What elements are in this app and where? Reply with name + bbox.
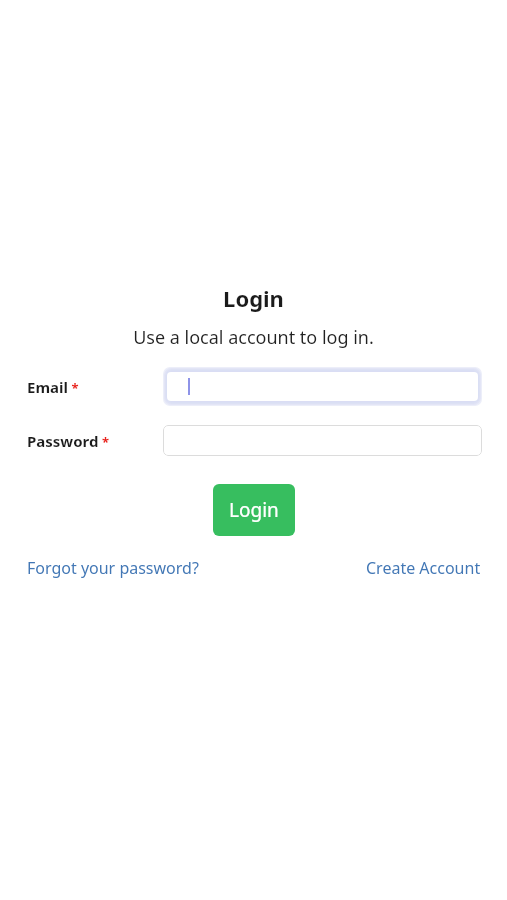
button[interactable]: Password input [163,425,482,456]
button[interactable]: Forgot your password? [27,557,199,579]
staticText: Password * [27,431,110,451]
staticText: Use a local account to log in. [0,325,507,350]
staticText: Forgot your password? [27,557,199,579]
staticText: Create Account [366,557,481,579]
button[interactable]: Create Account [366,557,481,579]
button[interactable]: Login [213,484,295,536]
staticText: Email * [27,377,79,397]
staticText: Login [229,497,279,523]
staticText: Login [0,283,507,313]
button[interactable]: Email input [163,367,482,406]
